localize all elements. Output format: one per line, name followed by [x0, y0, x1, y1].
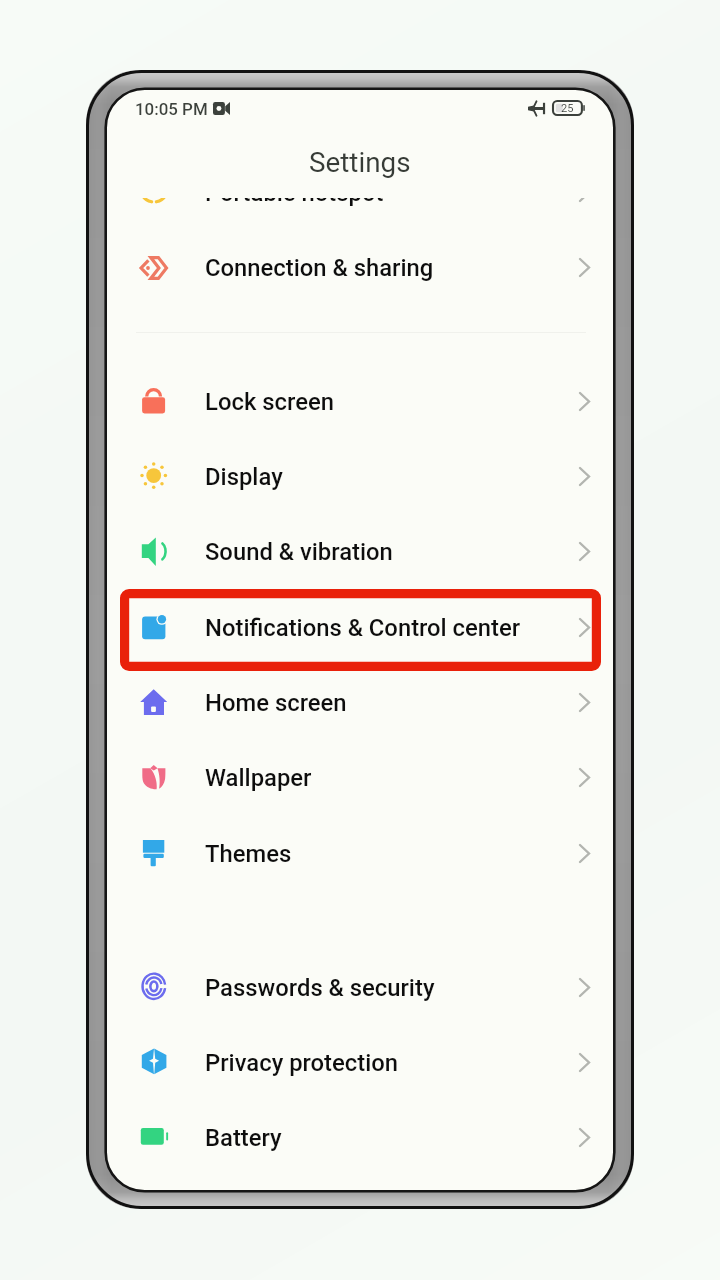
staticText: Wallpaper [205, 764, 312, 792]
staticText: Display [205, 463, 283, 491]
button[interactable]: Portable hotspot [106, 155, 614, 230]
staticText: Themes [205, 840, 292, 868]
button[interactable]: Battery [106, 1100, 614, 1175]
staticText: Passwords & security [205, 974, 435, 1002]
staticText: Home screen [205, 689, 347, 717]
button[interactable]: Lock screen [106, 364, 614, 439]
staticText: Notifications & Control center [205, 614, 521, 642]
button[interactable]: Passwords & security [106, 950, 614, 1025]
button[interactable]: Home screen [106, 665, 614, 740]
staticText: Lock screen [205, 388, 334, 416]
button[interactable]: Privacy protection [106, 1025, 614, 1100]
button[interactable]: Notifications & Control center [106, 590, 614, 665]
staticText: Connection & sharing [205, 254, 434, 282]
staticText: Sound & vibration [205, 538, 393, 566]
staticText: Settings [309, 146, 411, 179]
button[interactable]: Sound & vibration [106, 514, 614, 589]
button[interactable]: Themes [106, 816, 614, 891]
staticText: 25 [561, 102, 574, 115]
staticText: Privacy protection [205, 1049, 399, 1077]
button[interactable]: Display [106, 439, 614, 514]
staticText: Portable hotspot [205, 179, 384, 207]
staticText: 10:05 PM [135, 99, 208, 119]
button[interactable]: Connection & sharing [106, 230, 614, 305]
button[interactable]: Wallpaper [106, 740, 614, 815]
staticText: Battery [205, 1124, 282, 1152]
